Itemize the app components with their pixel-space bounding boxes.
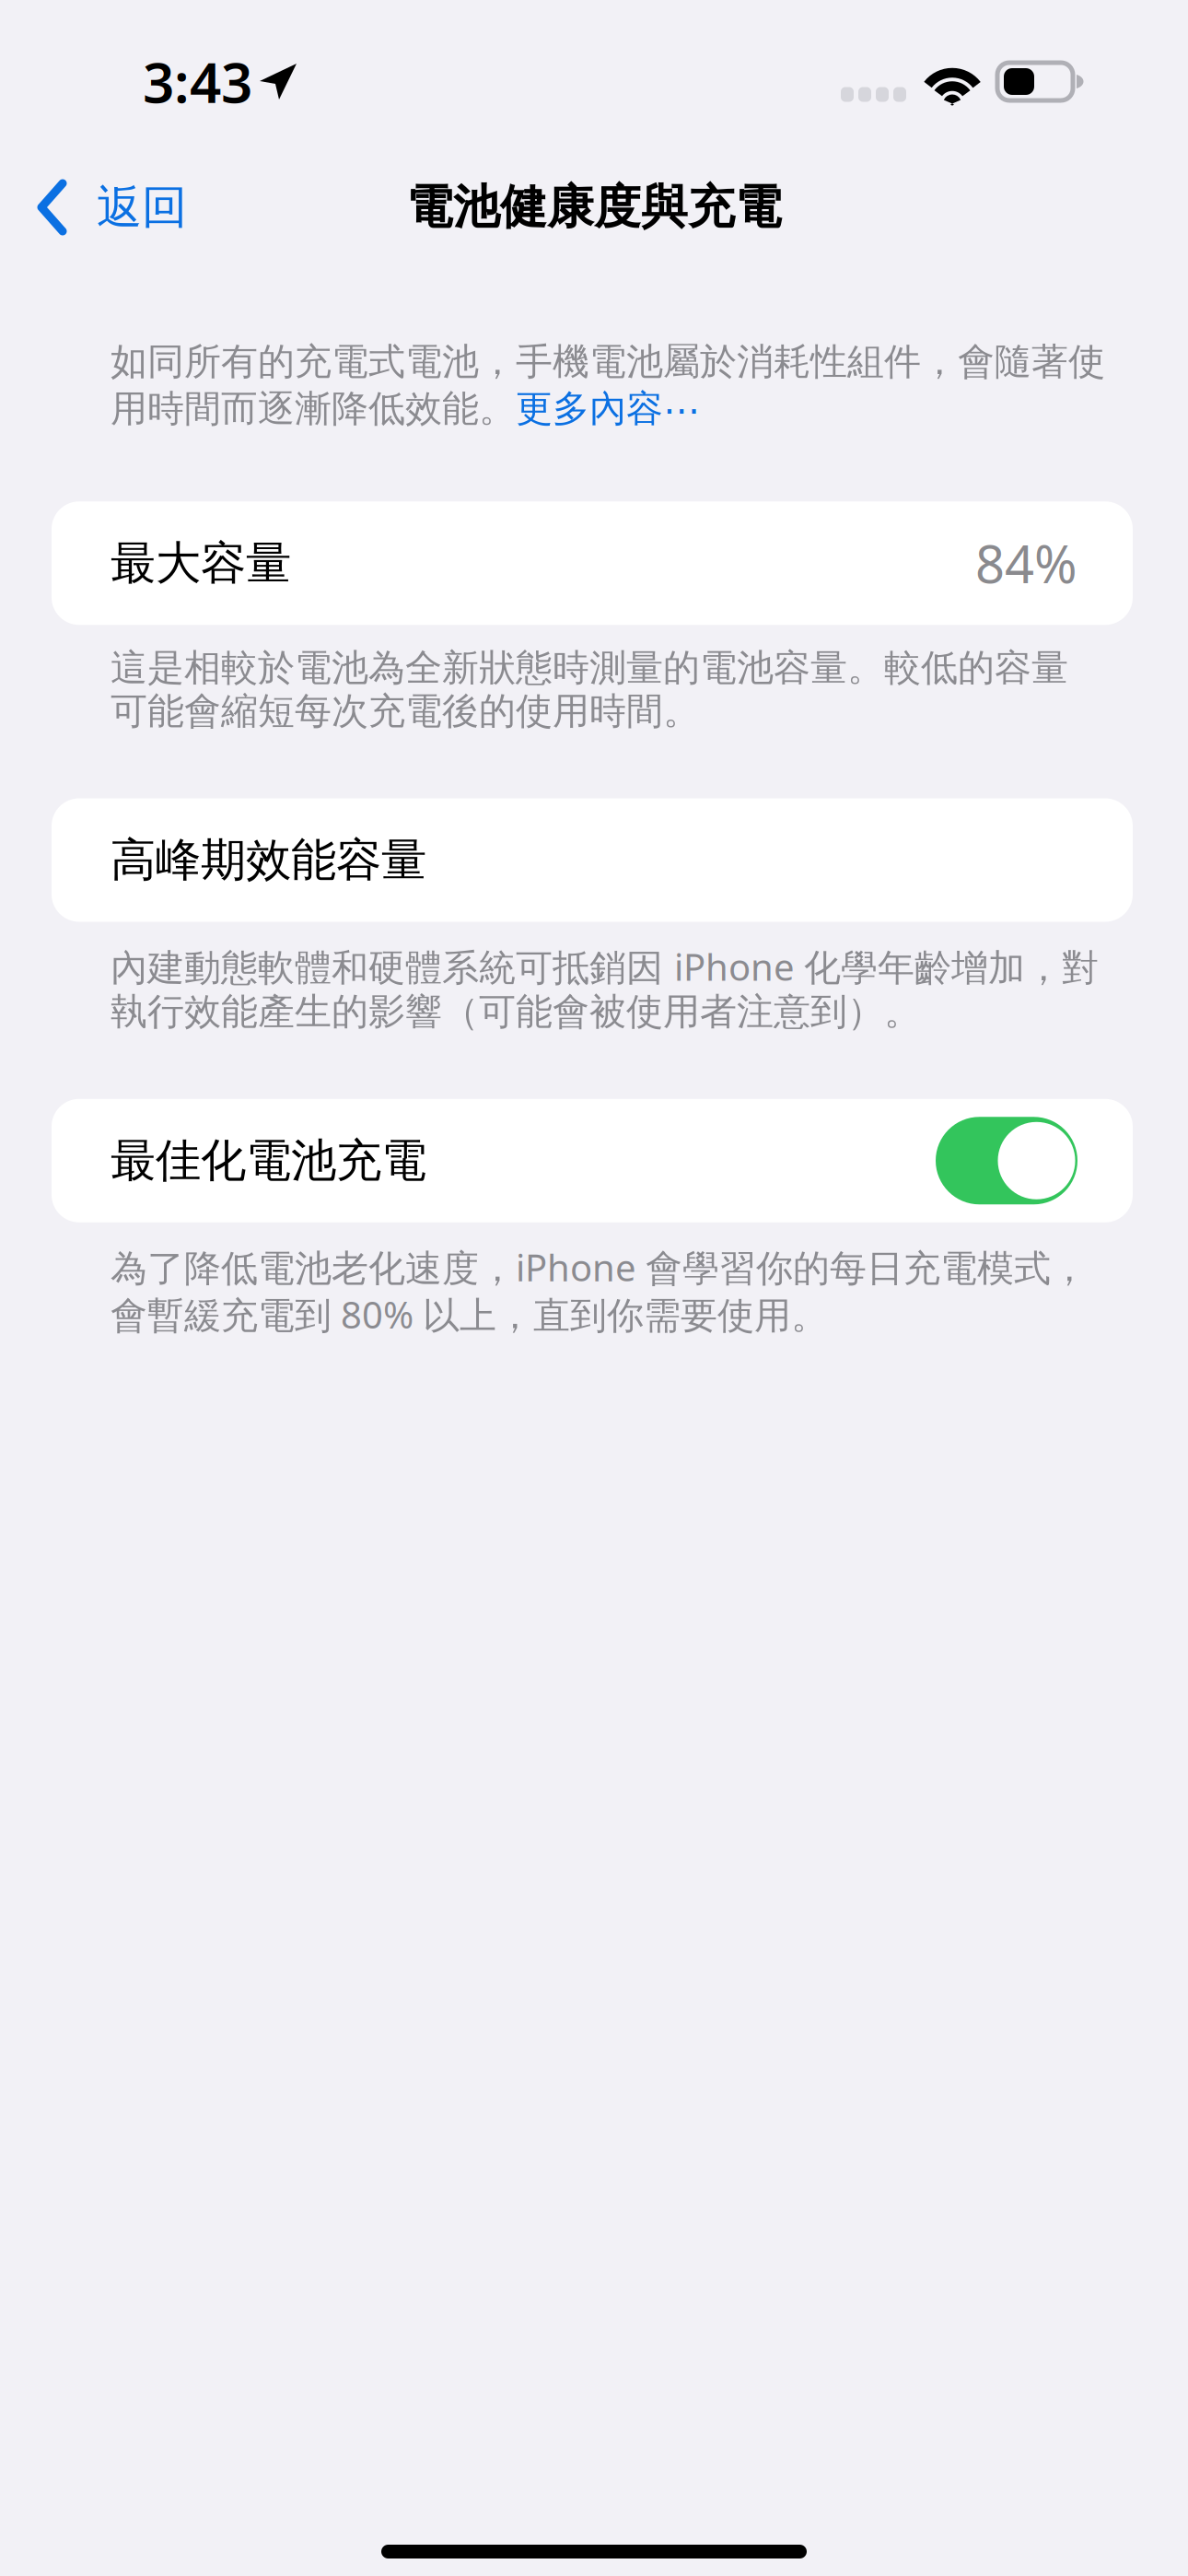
staticText: 最佳化電池充電 xyxy=(111,1133,426,1189)
button[interactable]: 高峰期效能容量 xyxy=(0,798,1188,922)
staticText: 為了降低電池老化速度，iPhone 會學習你的每日充電模式，會暫緩充電到 80%… xyxy=(111,1243,1088,1339)
staticText: 返回 xyxy=(97,179,187,235)
staticText: 內建動態軟體和硬體系統可抵銷因 iPhone 化學年齡增加，對執行效能產生的影響… xyxy=(111,942,1099,1034)
staticText: 最大容量 xyxy=(111,535,291,591)
staticText: 84% xyxy=(975,529,1077,597)
staticText: 如同所有的充電式電池，手機電池屬於消耗性組件，會隨著使 xyxy=(111,339,1105,384)
staticText: 高峰期效能容量 xyxy=(111,832,426,888)
staticText: 電池健康度與充電 xyxy=(406,179,782,236)
staticText: 3:43 xyxy=(143,45,252,118)
button[interactable]: 最佳化電池充電 xyxy=(936,1117,1077,1204)
button[interactable]: 更多內容⋯ xyxy=(516,386,700,431)
staticText: 用時間而逐漸降低效能。 xyxy=(111,386,516,431)
button[interactable]: 返回 xyxy=(0,162,209,252)
staticText: 更多內容⋯ xyxy=(516,386,700,431)
staticText: 這是相較於電池為全新狀態時測量的電池容量。較低的容量可能會縮短每次充電後的使用時… xyxy=(111,645,1068,734)
